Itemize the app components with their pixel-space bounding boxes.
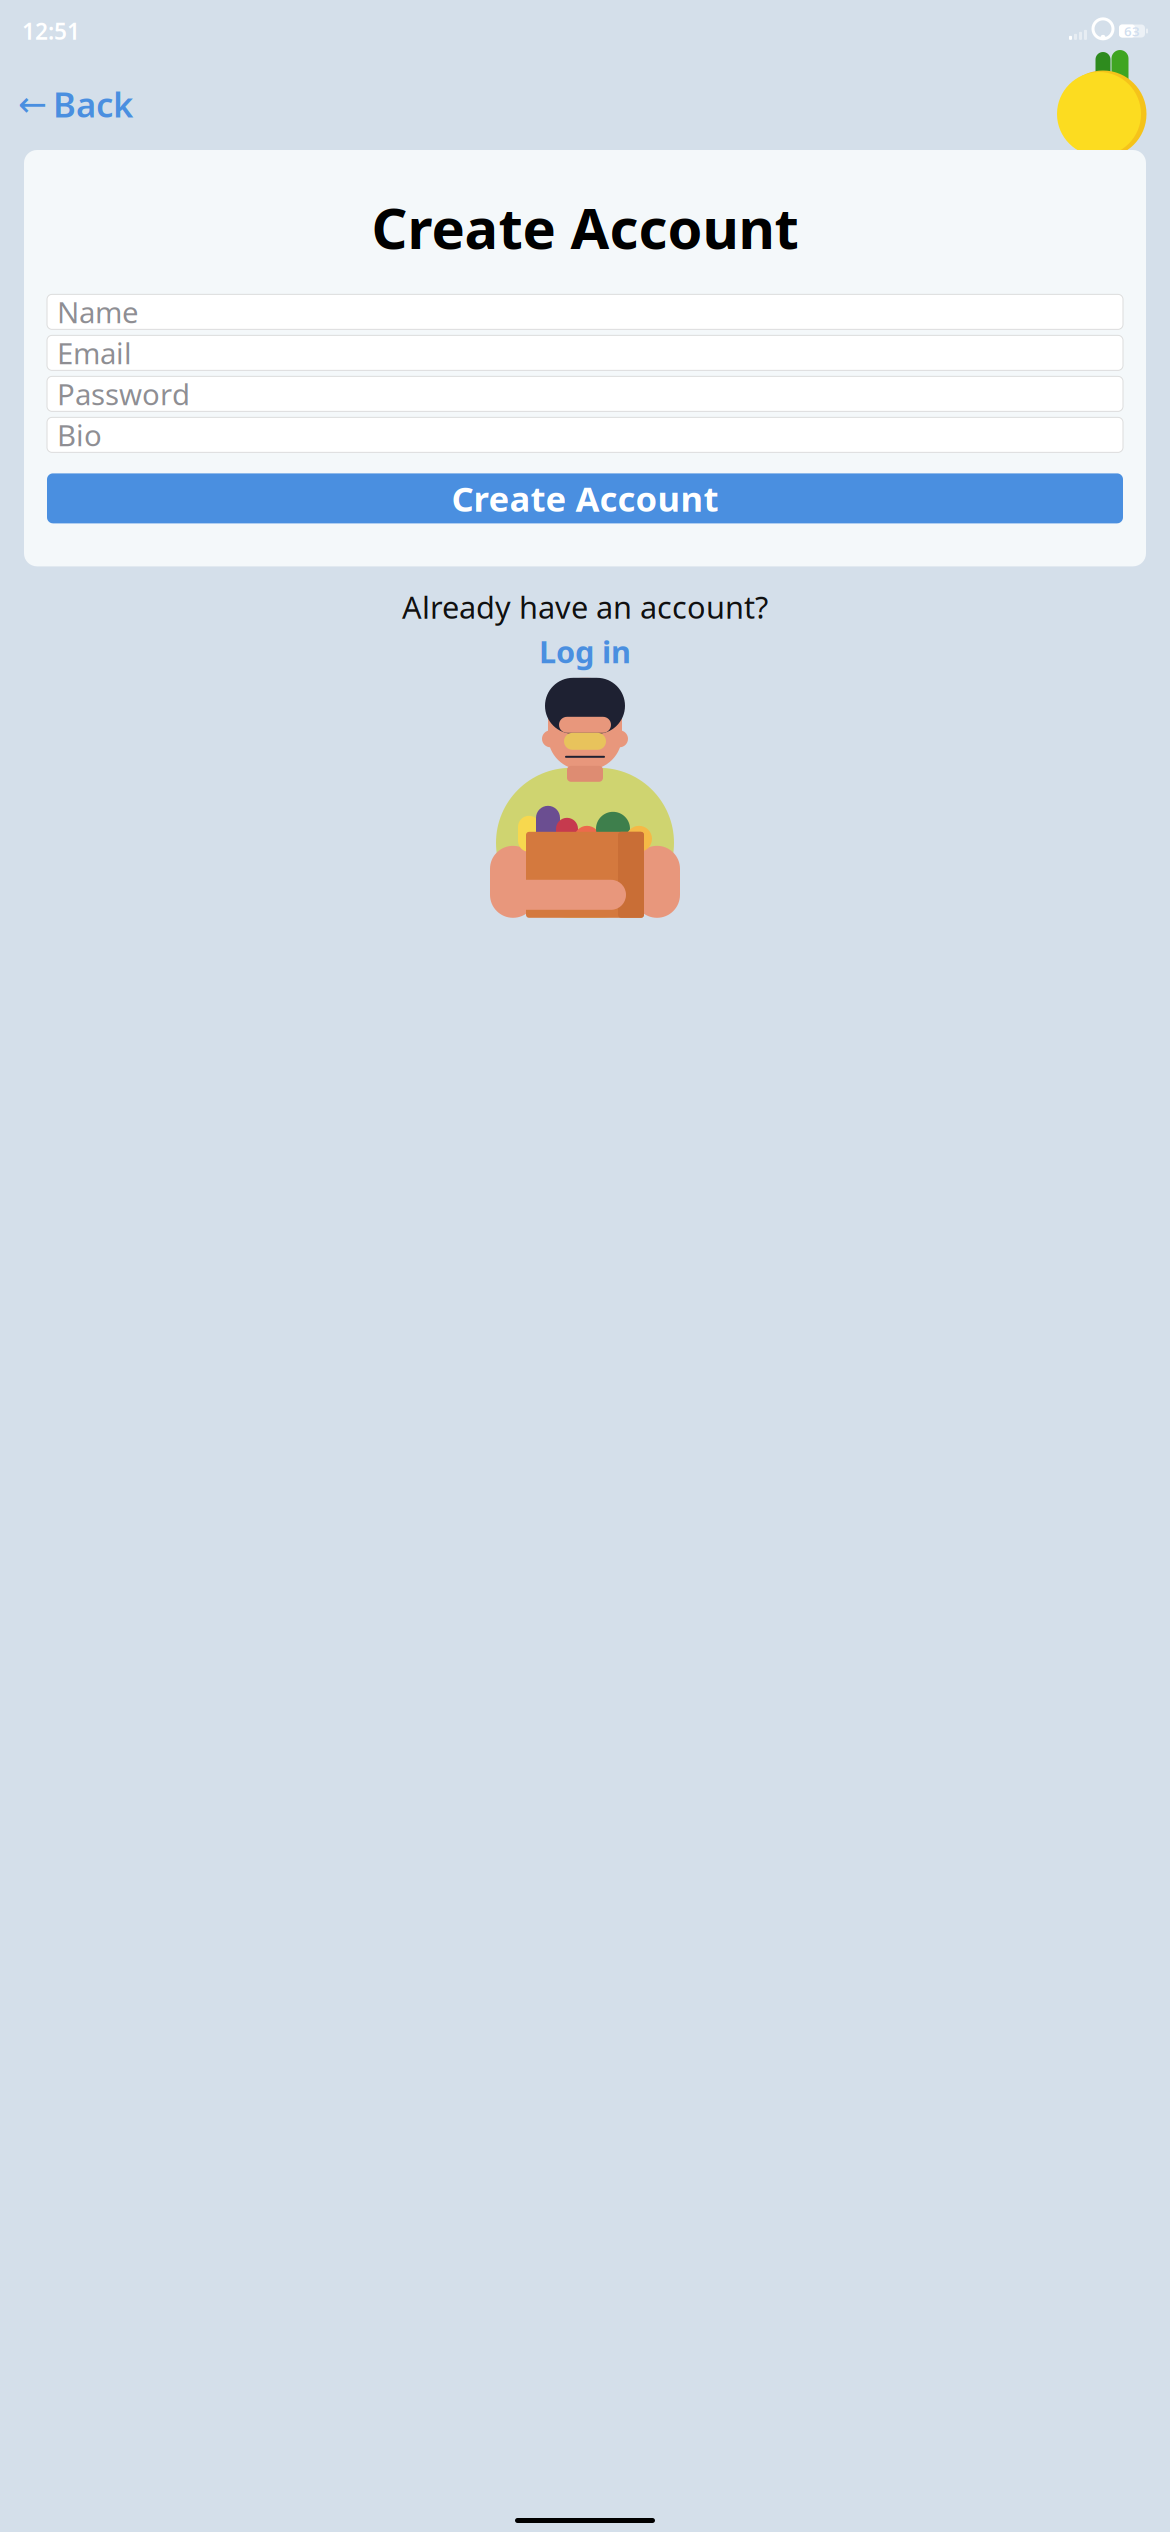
button[interactable]: Email bbox=[47, 335, 1123, 370]
staticText: Bio bbox=[57, 415, 102, 454]
staticText: Create Account bbox=[451, 475, 718, 521]
button[interactable]: Password bbox=[47, 376, 1123, 411]
staticText: Back bbox=[53, 81, 133, 127]
staticText: Log in bbox=[539, 631, 631, 672]
button[interactable]: Bio bbox=[47, 417, 1123, 452]
button[interactable]: Create Account bbox=[47, 473, 1123, 523]
staticText: 63 bbox=[1124, 22, 1140, 40]
staticText: Create Account bbox=[371, 190, 798, 264]
staticText: 12:51 bbox=[22, 16, 80, 46]
button[interactable]: Log in bbox=[533, 629, 637, 674]
button[interactable]: Name bbox=[47, 294, 1123, 329]
staticText: Name bbox=[57, 292, 139, 331]
staticText: ← bbox=[18, 84, 47, 124]
staticText: Password bbox=[57, 374, 190, 413]
staticText: Already have an account? bbox=[402, 586, 768, 627]
button[interactable]: ← bbox=[14, 77, 137, 131]
staticText: Email bbox=[57, 333, 132, 372]
